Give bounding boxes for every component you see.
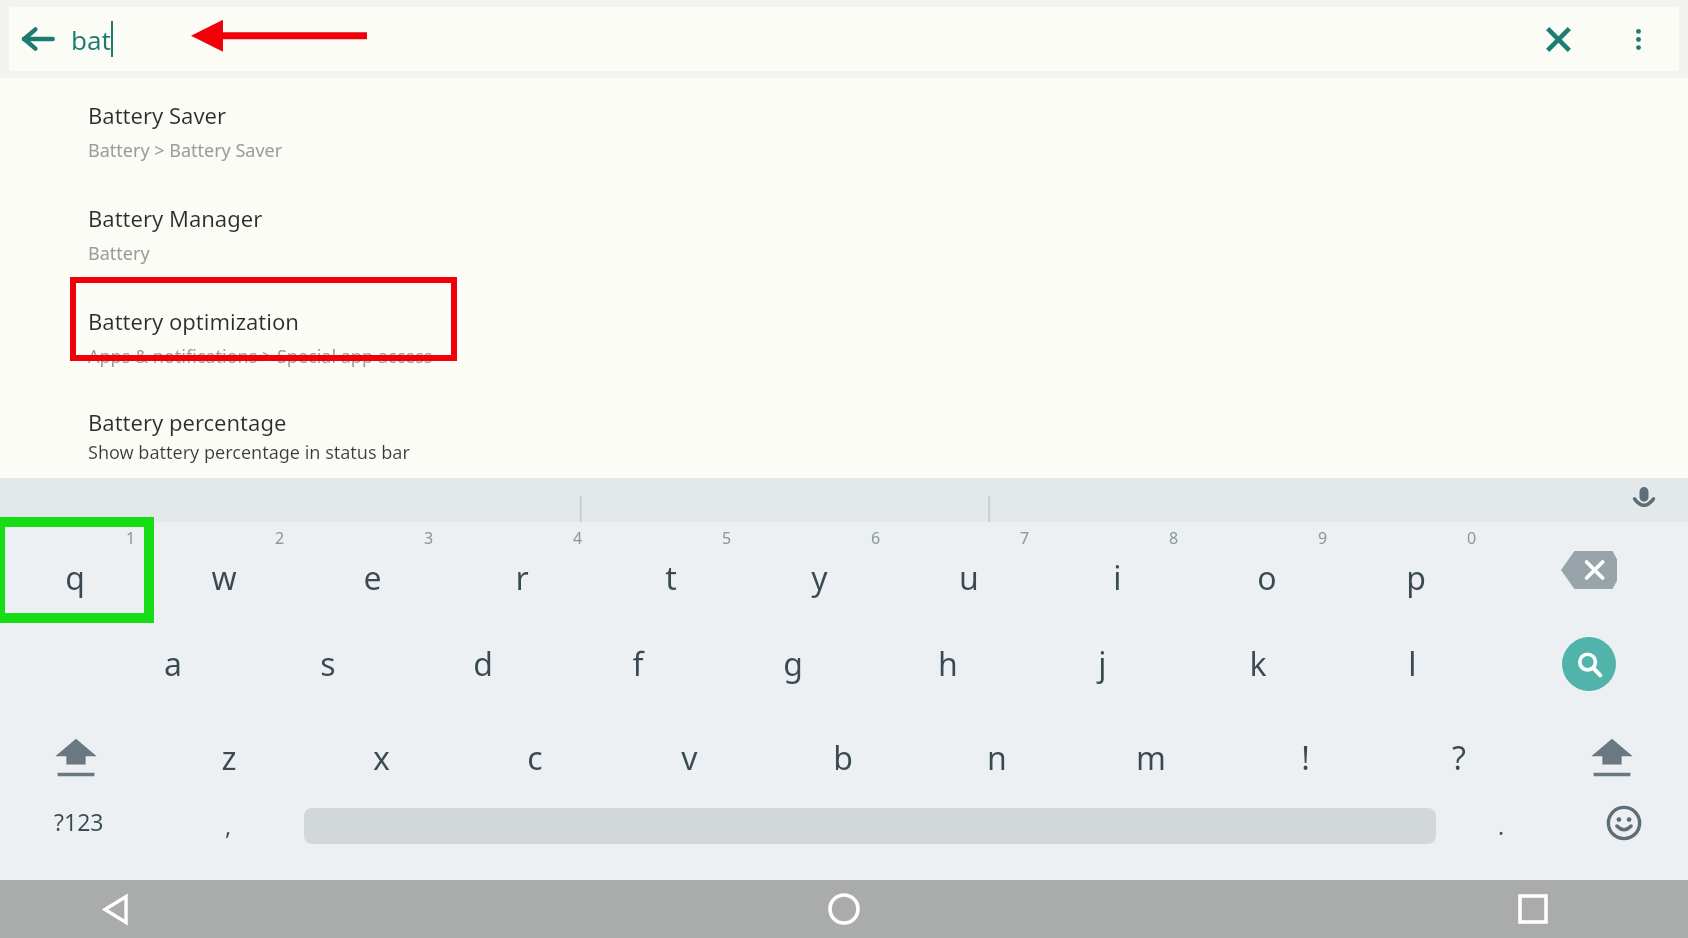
staticText: 7 <box>1020 527 1030 549</box>
staticText: ! <box>1301 736 1310 780</box>
button[interactable]: a <box>96 618 250 710</box>
button[interactable]: j <box>1025 618 1180 710</box>
button[interactable]: Battery optimization <box>0 266 1688 369</box>
button[interactable]: Emoji <box>1560 806 1688 938</box>
staticText: ? <box>1452 736 1466 780</box>
button[interactable]: Recents <box>1378 880 1688 938</box>
staticText: h <box>938 642 958 686</box>
staticText: 9 <box>1318 527 1328 549</box>
staticText: Battery percentage <box>88 407 287 437</box>
staticText: 1 <box>126 527 136 549</box>
staticText: Apps & notifications > Special app acces… <box>88 344 433 369</box>
staticText: x <box>373 736 390 780</box>
button[interactable]: v <box>612 710 766 806</box>
staticText: b <box>833 736 853 780</box>
button[interactable]: Search <box>1490 618 1688 710</box>
staticText: 0 <box>1467 527 1477 549</box>
staticText: r <box>515 556 529 600</box>
button[interactable]: x <box>305 710 458 806</box>
staticText: o <box>1257 556 1277 600</box>
button[interactable]: ?123 <box>0 806 158 938</box>
staticText: Battery Manager <box>88 203 263 233</box>
staticText: Battery Saver <box>88 100 227 130</box>
staticText: Battery > Battery Saver <box>88 138 283 163</box>
staticText: a <box>164 642 182 686</box>
button[interactable]: g <box>715 618 870 710</box>
button[interactable]: Battery percentage <box>0 369 1688 478</box>
button[interactable]: . <box>1442 806 1560 938</box>
button[interactable]: b <box>766 710 920 806</box>
staticText: 4 <box>573 527 583 549</box>
staticText: 6 <box>871 527 881 549</box>
staticText: n <box>987 736 1007 780</box>
staticText: Battery optimization <box>88 306 299 336</box>
staticText: m <box>1136 736 1166 780</box>
button[interactable]: 9 <box>1192 522 1341 618</box>
button[interactable]: Back <box>9 10 67 68</box>
staticText: 3 <box>424 527 434 549</box>
button[interactable]: Back <box>0 880 230 938</box>
button[interactable]: Shift <box>0 710 152 806</box>
staticText: Show battery percentage in status bar <box>88 440 410 465</box>
button[interactable]: Voice input <box>1622 478 1666 522</box>
staticText: . <box>1498 810 1505 841</box>
staticText: u <box>959 556 979 600</box>
staticText: v <box>681 736 698 780</box>
button[interactable]: 0 <box>1341 522 1490 618</box>
button[interactable]: c <box>458 710 612 806</box>
button[interactable]: f <box>560 618 715 710</box>
button[interactable]: , <box>158 806 298 938</box>
button[interactable]: k <box>1180 618 1335 710</box>
button[interactable]: l <box>1335 618 1490 710</box>
button[interactable]: 6 <box>745 522 894 618</box>
staticText: w <box>211 556 237 600</box>
button[interactable]: 8 <box>1043 522 1192 618</box>
button[interactable]: m <box>1074 710 1228 806</box>
staticText: , <box>225 810 232 841</box>
staticText: g <box>783 642 803 686</box>
button[interactable]: Shift <box>1536 710 1688 806</box>
staticText: 5 <box>722 527 732 549</box>
staticText: 8 <box>1169 527 1179 549</box>
staticText: p <box>1406 556 1426 600</box>
staticText: s <box>320 642 336 686</box>
button[interactable]: z <box>152 710 305 806</box>
button[interactable]: Battery Manager <box>0 163 1688 266</box>
button[interactable]: 1 <box>0 522 149 618</box>
button[interactable]: 5 <box>596 522 745 618</box>
staticText: d <box>473 642 493 686</box>
button[interactable]: More options <box>1609 10 1667 68</box>
staticText: c <box>527 736 543 780</box>
button[interactable]: Home <box>739 880 949 938</box>
staticText: ?123 <box>54 806 104 837</box>
button[interactable]: Backspace <box>1490 522 1688 618</box>
button[interactable]: ! <box>1228 710 1382 806</box>
button[interactable]: ? <box>1382 710 1536 806</box>
staticText: t <box>665 556 677 600</box>
button[interactable]: 2 <box>149 522 298 618</box>
staticText: Battery <box>88 241 150 266</box>
button[interactable]: n <box>920 710 1074 806</box>
staticText: k <box>1249 642 1267 686</box>
staticText: z <box>221 736 237 780</box>
staticText: l <box>1408 642 1417 686</box>
button[interactable]: Space <box>298 806 1442 938</box>
staticText: q <box>65 556 85 600</box>
staticText: y <box>811 556 828 600</box>
staticText: i <box>1113 556 1122 600</box>
button[interactable]: 7 <box>894 522 1043 618</box>
button[interactable]: h <box>870 618 1025 710</box>
staticText: j <box>1098 642 1107 686</box>
button[interactable]: 3 <box>298 522 447 618</box>
staticText: 2 <box>275 527 285 549</box>
button[interactable]: Clear search <box>1529 10 1587 68</box>
staticText: f <box>632 642 644 686</box>
staticText: bat <box>71 22 111 57</box>
button[interactable]: Battery Saver <box>0 78 1688 163</box>
button[interactable]: s <box>250 618 405 710</box>
button[interactable]: 4 <box>447 522 596 618</box>
staticText: e <box>363 556 382 600</box>
button[interactable]: d <box>405 618 560 710</box>
